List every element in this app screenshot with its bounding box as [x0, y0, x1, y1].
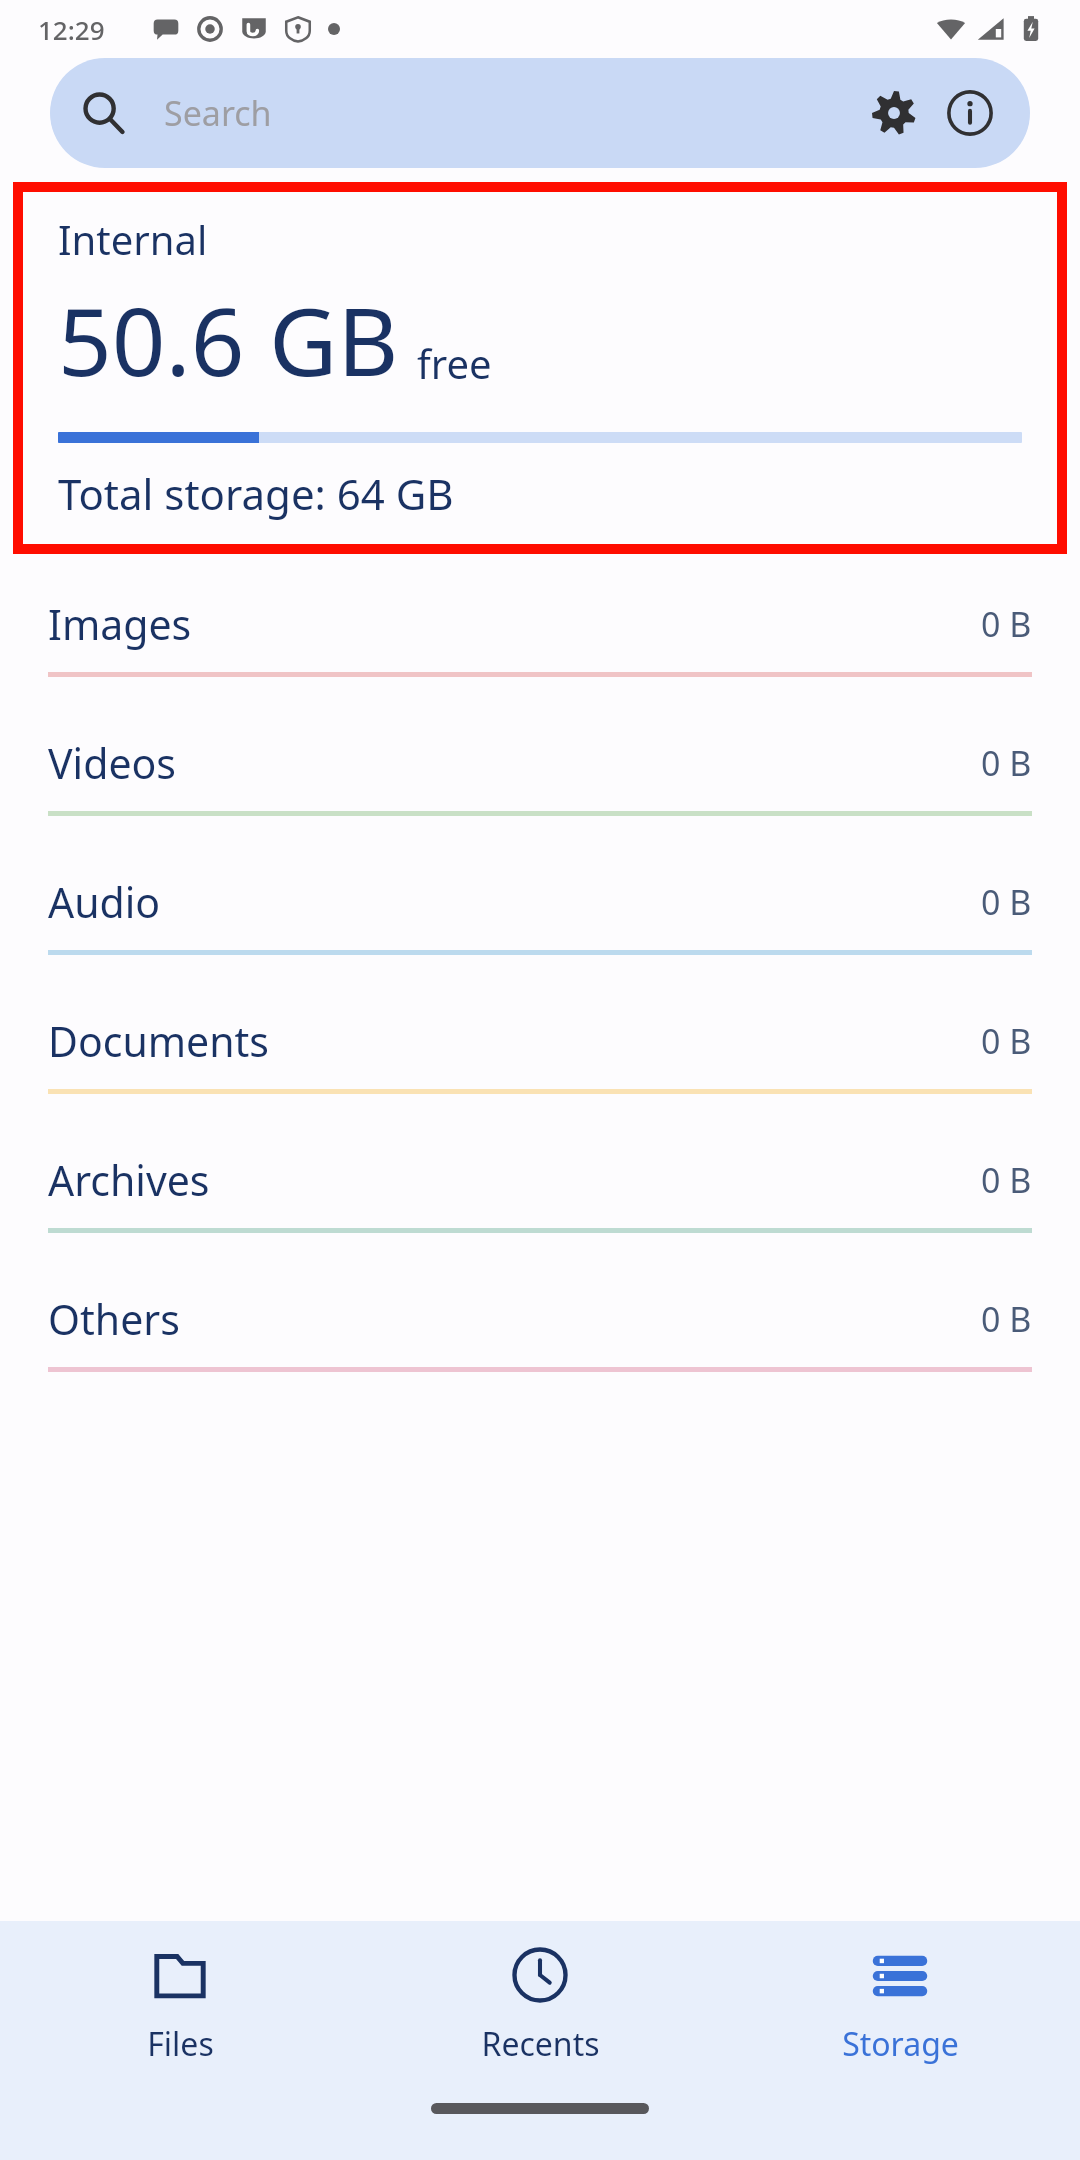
staticText: Archives	[48, 1152, 981, 1208]
button[interactable]: Storage	[720, 1921, 1080, 2091]
button[interactable]: Images	[0, 576, 1080, 715]
button[interactable]: Settings	[856, 75, 932, 151]
staticText: Files	[147, 2022, 214, 2066]
staticText: Images	[48, 596, 981, 652]
staticText: 0 B	[981, 1157, 1032, 1203]
other: Search	[78, 87, 130, 139]
staticText: 50.6 GB	[58, 276, 399, 404]
staticText: free	[417, 336, 492, 390]
button[interactable]: Archives	[0, 1132, 1080, 1271]
button[interactable]: Info	[932, 75, 1008, 151]
staticText: Recents	[481, 2022, 600, 2066]
staticText: 0 B	[981, 1296, 1032, 1342]
button[interactable]: Videos	[0, 715, 1080, 854]
staticText: 12:29	[38, 12, 105, 47]
staticText: Others	[48, 1291, 981, 1347]
staticText: 0 B	[981, 879, 1032, 925]
button[interactable]: Search	[50, 58, 1030, 168]
staticText: 0 B	[981, 740, 1032, 786]
staticText: 0 B	[981, 1018, 1032, 1064]
staticText: 0 B	[981, 601, 1032, 647]
staticText: Search	[164, 90, 856, 136]
button[interactable]: Others	[0, 1271, 1080, 1410]
button[interactable]: Internal	[23, 192, 1057, 544]
staticText: Audio	[48, 874, 981, 930]
button[interactable]: Audio	[0, 854, 1080, 993]
staticText: Total storage: 64 GB	[58, 465, 454, 522]
staticText: Internal	[58, 212, 208, 266]
button[interactable]: Files	[0, 1921, 360, 2091]
staticText: Documents	[48, 1013, 981, 1069]
button[interactable]: Documents	[0, 993, 1080, 1132]
staticText: Videos	[48, 735, 981, 791]
staticText: Storage	[842, 2022, 959, 2066]
button[interactable]: Recents	[360, 1921, 720, 2091]
